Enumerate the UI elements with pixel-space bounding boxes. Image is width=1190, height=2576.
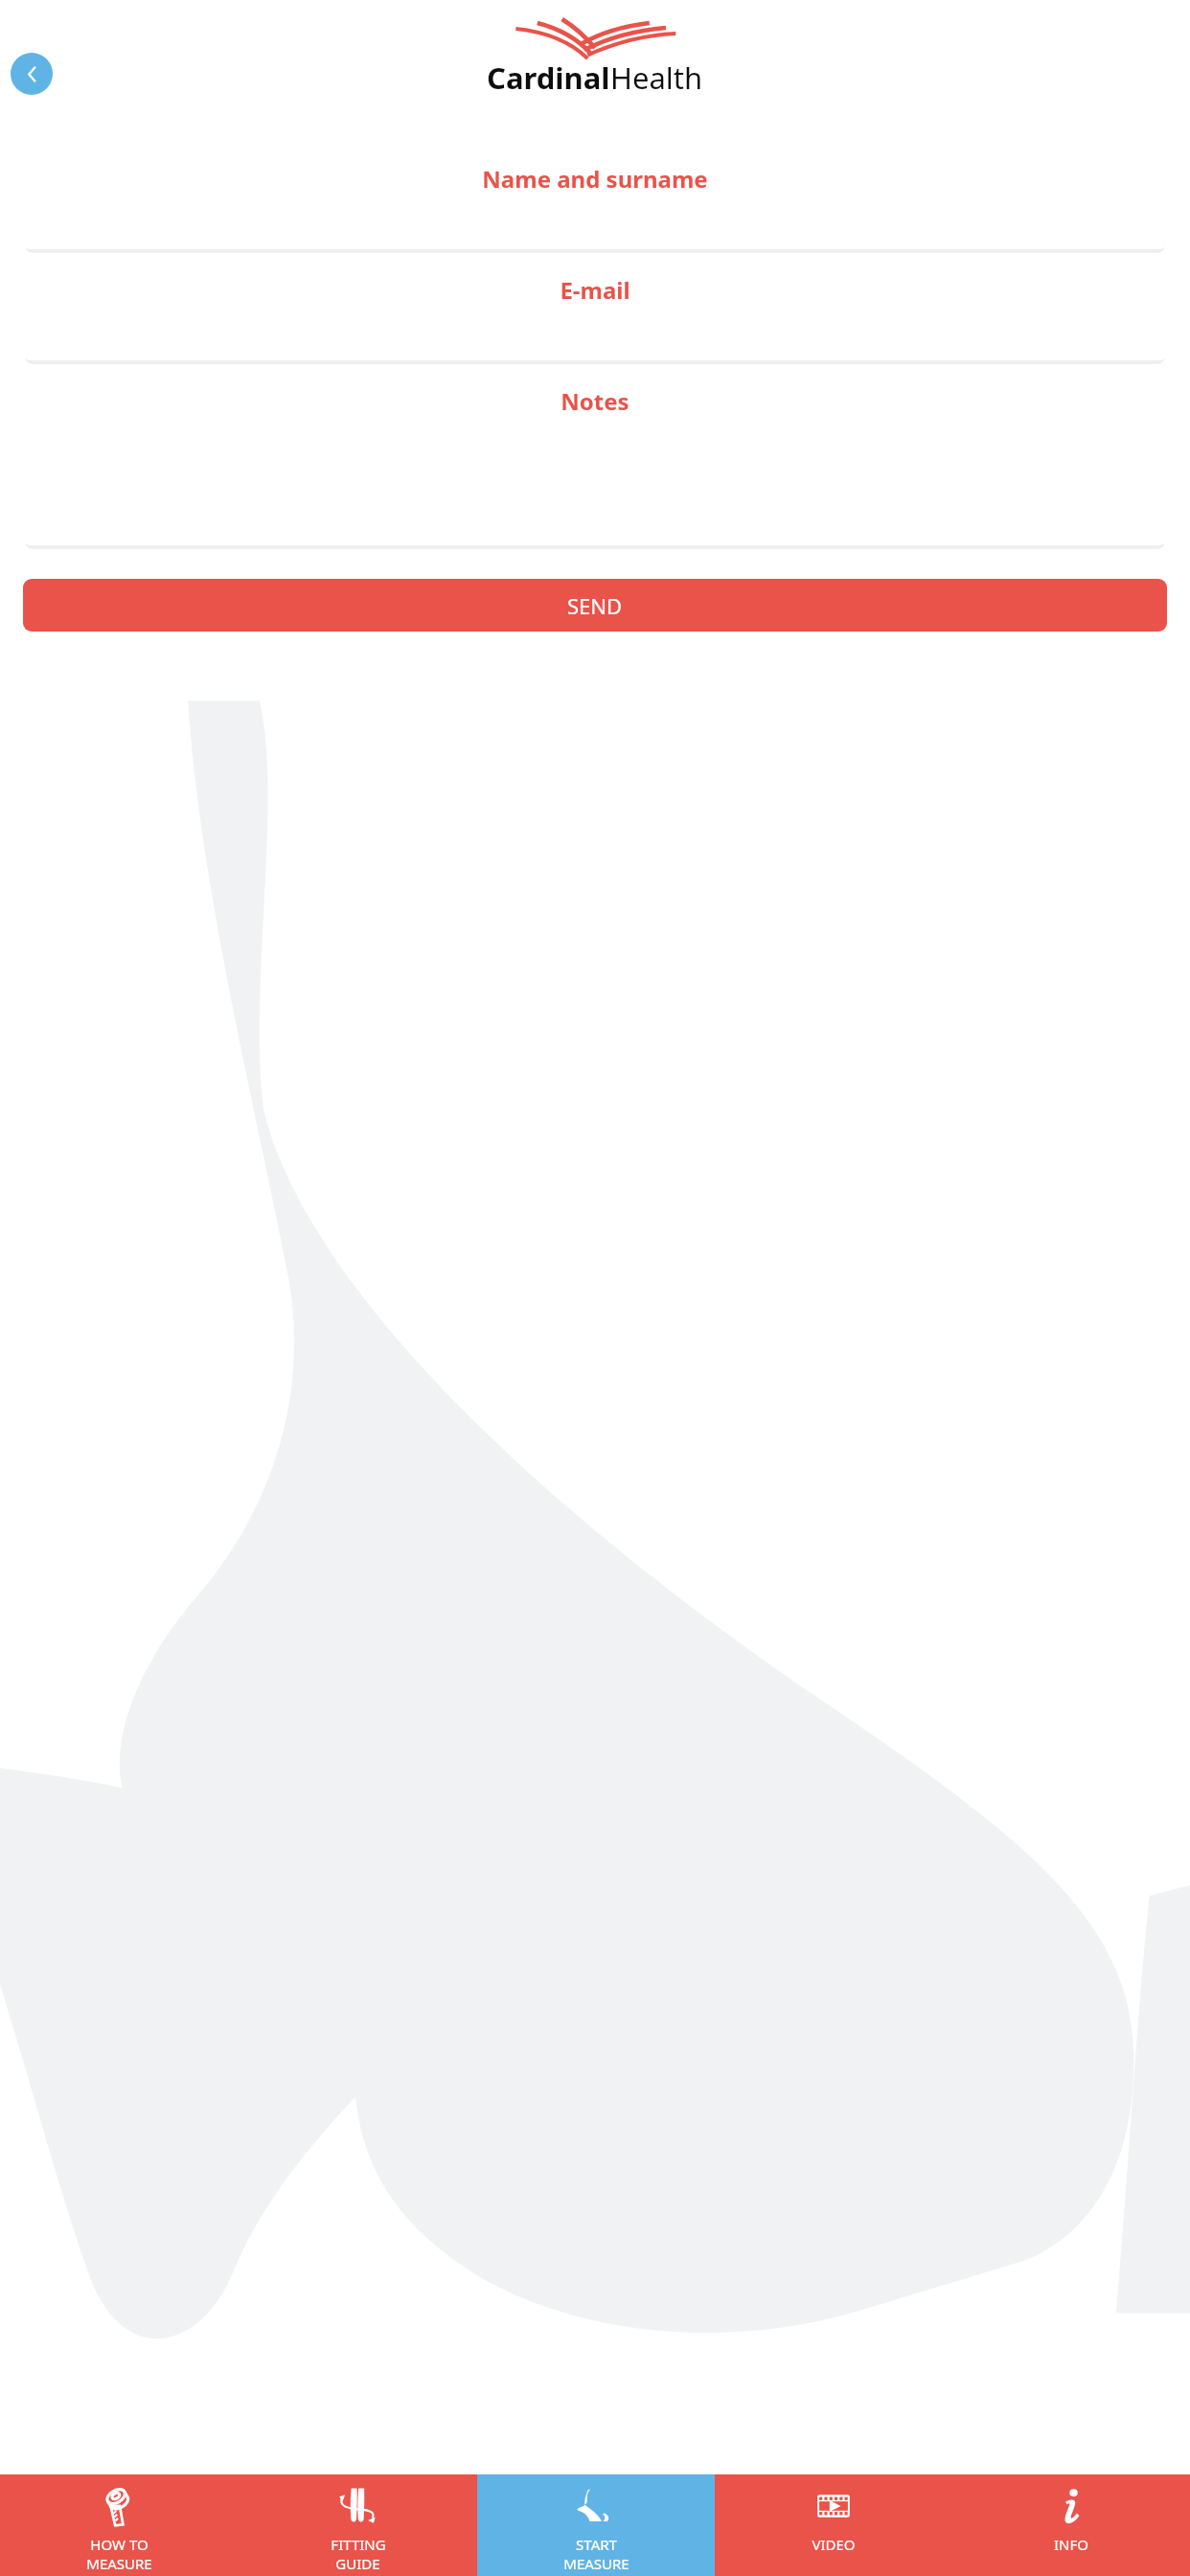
staticText: FITTING [331,2535,386,2554]
staticText: Cardinal [487,57,610,98]
staticText: GUIDE [335,2554,380,2573]
button[interactable]: Fitting guide [239,2474,477,2576]
staticText: HOW TO [90,2535,149,2554]
staticText: VIDEO [812,2535,856,2554]
staticText: Health [610,57,703,98]
staticText: MEASURE [563,2554,629,2573]
staticText: START [576,2535,617,2554]
button[interactable]: Video [715,2474,952,2576]
button[interactable]: SEND [23,579,1167,632]
staticText: INFO [1054,2535,1088,2554]
button[interactable]: Info [952,2474,1190,2576]
staticText: SEND [567,591,623,620]
button[interactable]: Start measure [477,2474,715,2576]
staticText: Name and surname [0,163,1190,195]
button[interactable]: How to measure [0,2474,239,2576]
button[interactable]: Back [11,53,53,95]
staticText: Notes [0,385,1190,417]
staticText: E-mail [0,274,1190,306]
staticText: MEASURE [86,2554,152,2573]
